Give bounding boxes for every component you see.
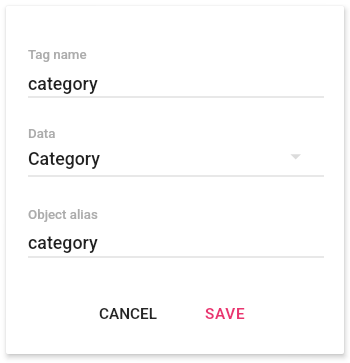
button[interactable]: Tag name — [28, 41, 324, 101]
button[interactable]: Open dropdown — [288, 150, 304, 166]
staticText: category — [28, 232, 98, 253]
staticText: Category — [28, 148, 101, 169]
button[interactable]: SAVE — [193, 295, 258, 333]
button[interactable]: Data — [28, 120, 324, 180]
staticText: category — [28, 73, 98, 94]
button[interactable]: CANCEL — [87, 295, 169, 333]
staticText: Data — [28, 126, 56, 142]
staticText: SAVE — [205, 305, 246, 323]
staticText: CANCEL — [99, 305, 157, 323]
staticText: Object alias — [28, 207, 98, 223]
staticText: Tag name — [28, 47, 87, 63]
button[interactable]: Object alias — [28, 201, 324, 261]
